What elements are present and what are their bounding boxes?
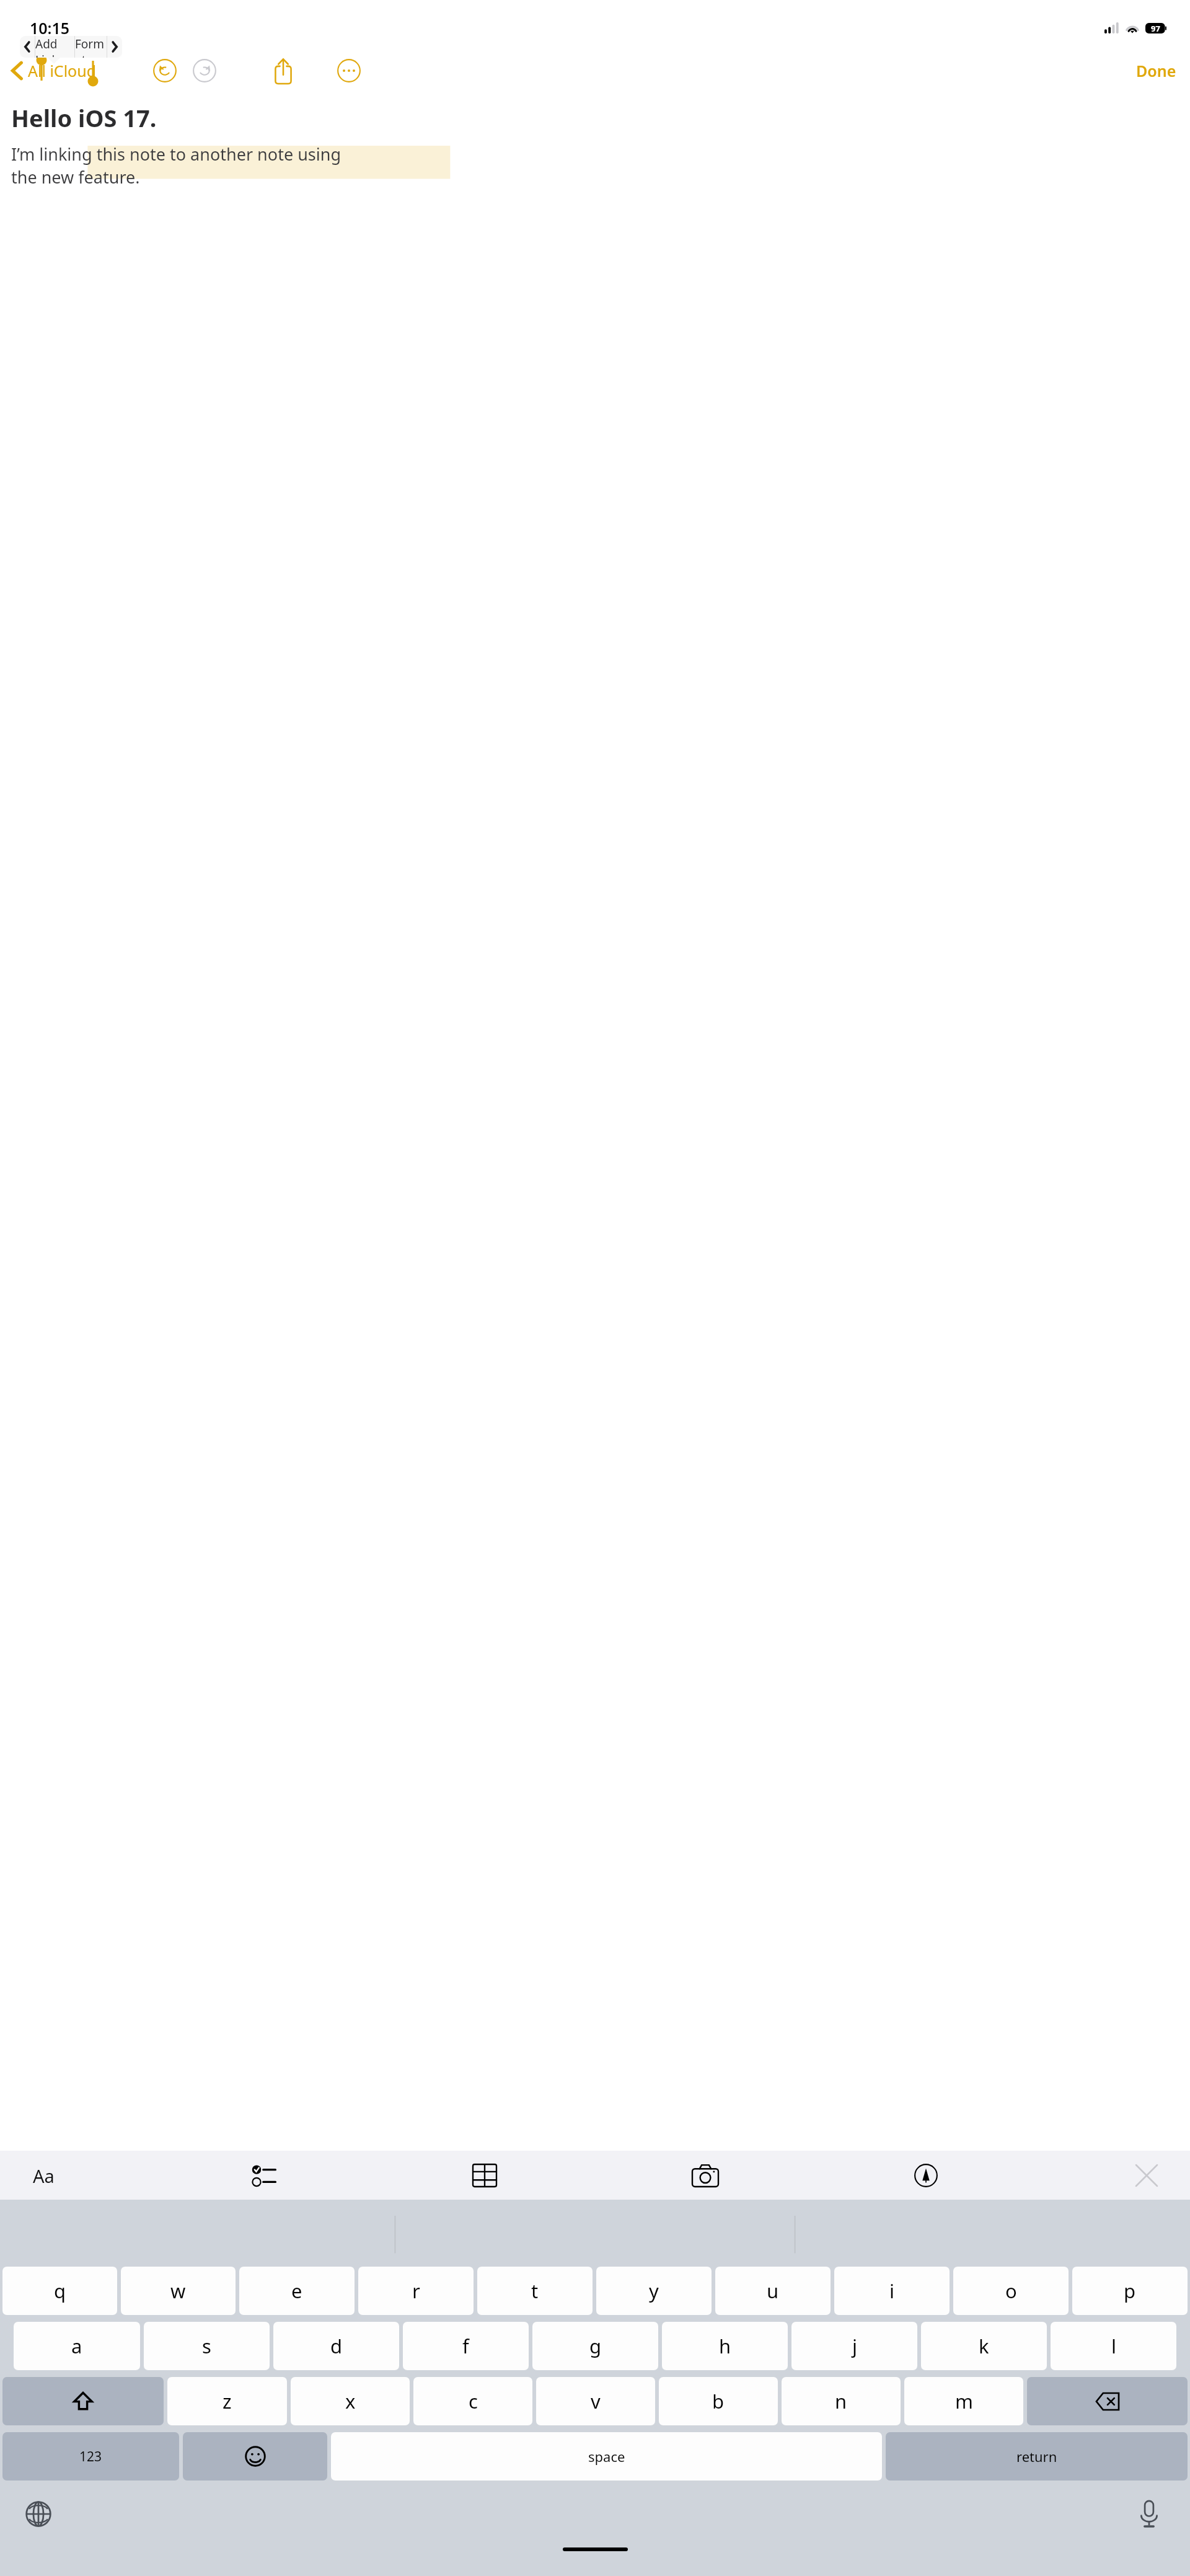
button[interactable]: All iCloud bbox=[11, 60, 97, 81]
staticText: Hello iOS 17. bbox=[11, 102, 157, 134]
button[interactable]: w bbox=[121, 2267, 236, 2315]
button[interactable]: d bbox=[273, 2322, 399, 2370]
button[interactable]: Format bbox=[75, 36, 107, 58]
button[interactable]: y bbox=[596, 2267, 712, 2315]
staticText: z bbox=[223, 2388, 232, 2414]
button[interactable]: Markup bbox=[907, 2154, 945, 2197]
staticText: w bbox=[170, 2278, 186, 2304]
staticText: f bbox=[462, 2333, 469, 2359]
button[interactable]: Shift bbox=[2, 2377, 164, 2425]
button[interactable]: Done bbox=[1136, 60, 1176, 81]
button[interactable]: return bbox=[886, 2432, 1188, 2481]
button[interactable]: Camera bbox=[687, 2154, 724, 2197]
staticText: g bbox=[589, 2333, 602, 2359]
button[interactable]: x bbox=[291, 2377, 410, 2425]
staticText: j bbox=[852, 2333, 857, 2359]
button[interactable]: Close keyboard bbox=[1128, 2154, 1165, 2197]
button[interactable]: v bbox=[536, 2377, 655, 2425]
button[interactable]: c bbox=[413, 2377, 532, 2425]
button[interactable]: i bbox=[834, 2267, 950, 2315]
button[interactable]: j bbox=[791, 2322, 917, 2370]
staticText: Add Link bbox=[35, 36, 74, 58]
button[interactable]: t bbox=[477, 2267, 593, 2315]
staticText: m bbox=[955, 2388, 973, 2414]
staticText: 97 bbox=[1151, 23, 1160, 33]
button[interactable]: Checklist bbox=[245, 2154, 283, 2197]
staticText: Done bbox=[1136, 60, 1176, 81]
button[interactable]: q bbox=[2, 2267, 117, 2315]
staticText: a bbox=[71, 2333, 82, 2359]
staticText: h bbox=[719, 2333, 731, 2359]
button[interactable]: f bbox=[403, 2322, 529, 2370]
staticText: o bbox=[1005, 2278, 1017, 2304]
button[interactable]: m bbox=[904, 2377, 1023, 2425]
staticText: q bbox=[54, 2278, 66, 2304]
staticText: the new feature. bbox=[11, 166, 140, 188]
button[interactable]: r bbox=[358, 2267, 474, 2315]
staticText: k bbox=[979, 2333, 989, 2359]
button[interactable]: 123 bbox=[2, 2432, 179, 2481]
button[interactable]: l bbox=[1051, 2322, 1176, 2370]
staticText: u bbox=[767, 2278, 779, 2304]
staticText: e bbox=[291, 2278, 302, 2304]
staticText: b bbox=[712, 2388, 725, 2414]
staticText: return bbox=[1016, 2447, 1057, 2466]
staticText: n bbox=[835, 2388, 847, 2414]
button[interactable]: Redo bbox=[187, 48, 222, 93]
staticText: s bbox=[202, 2333, 211, 2359]
staticText: I’m linking this note to another note us… bbox=[11, 143, 342, 166]
button[interactable]: o bbox=[953, 2267, 1069, 2315]
staticText: r bbox=[412, 2278, 420, 2304]
button[interactable]: h bbox=[662, 2322, 788, 2370]
button[interactable]: Text format bbox=[25, 2154, 62, 2197]
button[interactable]: Backspace bbox=[1027, 2377, 1188, 2425]
button[interactable]: Emoji bbox=[183, 2432, 327, 2481]
button[interactable]: b bbox=[659, 2377, 778, 2425]
button[interactable]: Change keyboard bbox=[20, 2495, 57, 2533]
button[interactable]: Previous bbox=[20, 36, 35, 58]
button[interactable]: e bbox=[239, 2267, 355, 2315]
button[interactable]: Undo bbox=[148, 53, 182, 88]
button[interactable]: Share bbox=[265, 53, 301, 89]
staticText: y bbox=[649, 2278, 659, 2304]
staticText: 123 bbox=[79, 2448, 102, 2466]
button[interactable]: a bbox=[14, 2322, 140, 2370]
button[interactable]: space bbox=[331, 2432, 882, 2481]
staticText: All iCloud bbox=[28, 60, 97, 81]
staticText: l bbox=[1111, 2333, 1116, 2359]
button[interactable]: Add Link bbox=[35, 36, 74, 58]
button[interactable]: Dictate bbox=[1130, 2495, 1168, 2533]
staticText: Format bbox=[75, 36, 107, 58]
staticText: 10:15 bbox=[30, 17, 70, 38]
staticText: i bbox=[889, 2278, 894, 2304]
button[interactable]: s bbox=[144, 2322, 270, 2370]
staticText: t bbox=[531, 2278, 539, 2304]
button[interactable]: n bbox=[782, 2377, 901, 2425]
button[interactable]: k bbox=[921, 2322, 1047, 2370]
staticText: space bbox=[588, 2447, 625, 2466]
button[interactable]: Next bbox=[107, 36, 122, 58]
staticText: p bbox=[1124, 2278, 1136, 2304]
button[interactable]: Table bbox=[466, 2154, 503, 2197]
button[interactable]: u bbox=[715, 2267, 831, 2315]
button[interactable]: More options bbox=[332, 53, 366, 88]
button[interactable]: z bbox=[167, 2377, 287, 2425]
staticText: c bbox=[469, 2388, 478, 2414]
staticText: d bbox=[330, 2333, 343, 2359]
staticText: Aa bbox=[33, 2164, 55, 2188]
staticText: v bbox=[591, 2388, 601, 2414]
button[interactable]: g bbox=[532, 2322, 658, 2370]
button[interactable]: p bbox=[1072, 2267, 1188, 2315]
staticText: x bbox=[345, 2388, 356, 2414]
